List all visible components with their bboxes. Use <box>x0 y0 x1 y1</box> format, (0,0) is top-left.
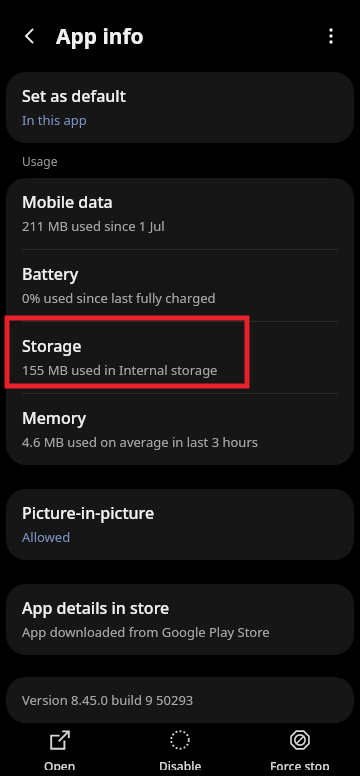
staticText: Allowed <box>22 528 71 546</box>
button[interactable]: Battery <box>6 250 354 321</box>
staticText: App downloaded from Google Play Store <box>22 623 270 641</box>
staticText: Disable <box>159 758 202 770</box>
staticText: 0% used since last fully charged <box>22 289 216 307</box>
staticText: App info <box>56 22 144 51</box>
button[interactable]: Storage <box>6 322 354 393</box>
staticText: In this app <box>22 111 87 129</box>
button[interactable]: Mobile data <box>6 178 354 249</box>
staticText: Picture-in-picture <box>22 502 155 524</box>
staticText: Set as default <box>22 85 126 107</box>
staticText: 4.6 MB used on average in last 3 hours <box>22 433 259 451</box>
staticText: Memory <box>22 407 87 429</box>
button[interactable]: Memory <box>6 394 354 465</box>
button[interactable]: Picture-in-picture <box>6 489 354 560</box>
button[interactable]: App details in store <box>6 584 354 655</box>
staticText: Usage <box>22 153 58 169</box>
button[interactable]: Disable <box>120 723 240 776</box>
button[interactable]: Back <box>10 16 50 56</box>
staticText: App details in store <box>22 597 170 619</box>
button[interactable]: Set as default <box>6 72 354 143</box>
staticText: Version 8.45.0 build 9 50293 <box>22 691 194 709</box>
staticText: Mobile data <box>22 191 113 213</box>
button[interactable]: Force stop <box>240 723 360 776</box>
button[interactable]: Open <box>0 723 120 776</box>
staticText: Open <box>44 758 76 770</box>
staticText: Battery <box>22 263 79 285</box>
staticText: Force stop <box>270 758 330 770</box>
staticText: 211 MB used since 1 Jul <box>22 217 165 235</box>
staticText: Storage <box>22 335 82 357</box>
staticText: 155 MB used in Internal storage <box>22 361 218 379</box>
button[interactable]: More options <box>311 16 351 56</box>
